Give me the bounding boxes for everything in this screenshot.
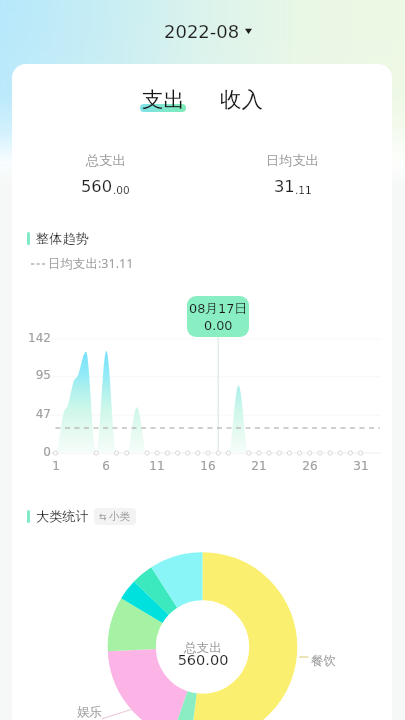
- staticText: ⇆: [99, 512, 107, 522]
- staticText: 收入: [220, 86, 263, 113]
- staticText: 日均支出:31.11: [48, 255, 134, 272]
- staticText: 餐饮: [311, 653, 336, 669]
- staticText: 1: [44, 459, 68, 473]
- staticText: 6: [94, 459, 118, 473]
- staticText: 21: [247, 459, 271, 473]
- staticText: 560: [81, 177, 113, 196]
- button[interactable]: 收入: [217, 86, 266, 113]
- staticText: 2022-08: [164, 21, 240, 42]
- staticText: 31: [274, 177, 295, 196]
- staticText: 26: [298, 459, 322, 473]
- staticText: 整体趋势: [36, 230, 89, 247]
- staticText: 47: [12, 407, 51, 421]
- button[interactable]: ⇆: [94, 508, 136, 525]
- staticText: 16: [196, 459, 220, 473]
- button[interactable]: 支出: [137, 86, 189, 113]
- staticText: .00: [113, 184, 130, 196]
- staticText: 95: [12, 368, 51, 382]
- staticText: 31: [349, 459, 373, 473]
- staticText: .11: [295, 184, 312, 196]
- staticText: 小类: [109, 510, 130, 523]
- staticText: 总支出: [158, 640, 248, 656]
- staticText: 11: [145, 459, 169, 473]
- button[interactable]: 2022-08: [154, 13, 262, 50]
- staticText: 娱乐: [77, 704, 102, 720]
- staticText: 总支出: [86, 152, 126, 169]
- staticText: 0: [12, 445, 51, 459]
- staticText: 08月17日: [189, 301, 248, 317]
- staticText: 支出: [142, 86, 185, 113]
- staticText: 142: [12, 331, 51, 345]
- staticText: 大类统计: [36, 508, 89, 525]
- staticText: 560.00: [158, 652, 248, 669]
- staticText: 日均支出: [266, 152, 319, 169]
- staticText: 0.00: [204, 318, 233, 333]
- button[interactable]: 08月17日: [187, 296, 249, 337]
